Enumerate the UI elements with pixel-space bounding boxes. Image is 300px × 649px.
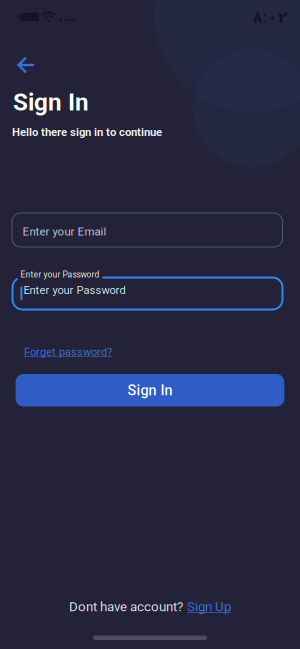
button[interactable]: Sign Up bbox=[187, 599, 231, 615]
button[interactable]: Forget password? bbox=[24, 345, 112, 358]
staticText: Sign In bbox=[13, 88, 89, 116]
staticText: Forget password? bbox=[24, 345, 112, 358]
button[interactable]: Enter your Password bbox=[12, 277, 282, 309]
button[interactable]: Sign In bbox=[16, 374, 284, 406]
staticText: Dont have account? bbox=[69, 599, 183, 615]
button[interactable]: Back bbox=[10, 49, 42, 81]
staticText: Sign In bbox=[127, 382, 172, 399]
staticText: Enter your Password bbox=[23, 284, 125, 297]
staticText: Sign Up bbox=[187, 599, 231, 615]
button[interactable]: Enter your Email bbox=[12, 213, 282, 247]
staticText: ٨:٠٢ bbox=[252, 7, 287, 27]
staticText: Enter your Password bbox=[20, 269, 99, 279]
staticText: Enter your Email bbox=[22, 225, 106, 238]
staticText: Hello there sign in to continue bbox=[12, 125, 162, 139]
